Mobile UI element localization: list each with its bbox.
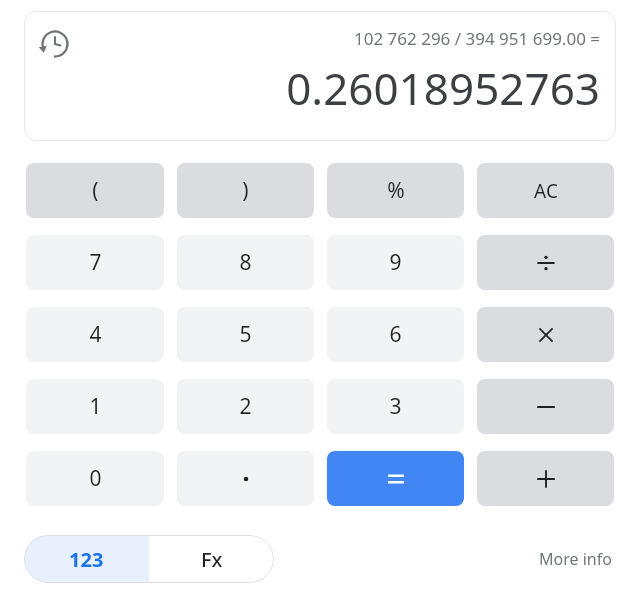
button[interactable]: Add — [477, 451, 614, 506]
button[interactable]: History — [33, 22, 77, 66]
staticText: ) — [242, 176, 249, 205]
staticText: % — [387, 176, 405, 205]
staticText: 2 — [239, 392, 252, 421]
button[interactable]: Equals — [327, 451, 464, 506]
button[interactable]: 8 — [177, 235, 314, 290]
staticText: ( — [92, 176, 99, 205]
button[interactable]: Subtract — [477, 379, 614, 434]
staticText: 1 — [89, 392, 102, 421]
staticText: 9 — [389, 248, 402, 277]
staticText: 123 — [69, 546, 104, 573]
staticText: 8 — [239, 248, 252, 277]
button[interactable]: 2 — [177, 379, 314, 434]
staticText: 0.26018952763 — [286, 58, 600, 118]
button[interactable]: 4 — [26, 307, 164, 362]
button[interactable]: Divide — [477, 235, 614, 290]
staticText: More info — [539, 548, 612, 570]
button[interactable]: AC — [477, 163, 614, 218]
button[interactable]: 5 — [177, 307, 314, 362]
button[interactable]: Fx — [149, 535, 274, 583]
staticText: 102 762 296 / 394 951 699.00 = — [353, 27, 600, 50]
button[interactable]: ) — [177, 163, 314, 218]
button[interactable]: % — [327, 163, 464, 218]
button[interactable]: Multiply — [477, 307, 614, 362]
staticText: 7 — [89, 248, 102, 277]
button[interactable]: 3 — [327, 379, 464, 434]
button[interactable]: 0 — [26, 451, 164, 506]
staticText: 5 — [239, 320, 252, 349]
staticText: 4 — [89, 320, 102, 349]
button[interactable]: Decimal point — [177, 451, 314, 506]
staticText: AC — [534, 178, 558, 204]
staticText: 3 — [389, 392, 402, 421]
button[interactable]: 6 — [327, 307, 464, 362]
button[interactable]: 9 — [327, 235, 464, 290]
button[interactable]: More info — [535, 542, 616, 576]
staticText: Fx — [201, 546, 223, 573]
button[interactable]: ( — [26, 163, 164, 218]
button[interactable]: 7 — [26, 235, 164, 290]
staticText: 6 — [389, 320, 402, 349]
button[interactable]: 1 — [26, 379, 164, 434]
staticText: 0 — [89, 464, 102, 493]
button[interactable]: 123 — [24, 535, 149, 583]
